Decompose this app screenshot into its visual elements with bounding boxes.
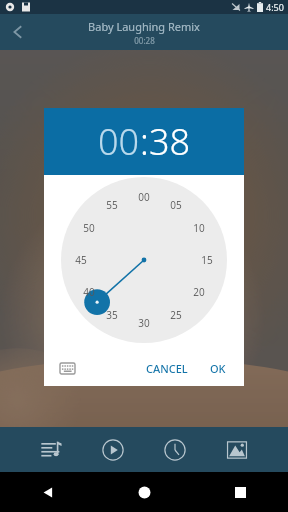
staticText: 35 (106, 308, 118, 322)
staticText: CANCEL (146, 361, 188, 376)
staticText: 50 (83, 221, 95, 235)
button[interactable]: 38 (149, 117, 191, 166)
button[interactable]: Minute dial (61, 177, 227, 343)
staticText: 40 (83, 285, 95, 299)
staticText: 00 (138, 190, 150, 204)
button[interactable]: Image (220, 433, 254, 467)
button[interactable]: Recents (223, 475, 257, 509)
button[interactable]: Home (127, 475, 161, 509)
button[interactable]: OK (202, 355, 234, 382)
button[interactable]: Play (96, 433, 130, 467)
staticText: Baby Laughing Remix (88, 19, 200, 34)
button[interactable]: Switch to keyboard input (54, 355, 80, 381)
button[interactable]: 00 (98, 117, 140, 166)
button[interactable]: Timer (158, 433, 192, 467)
button[interactable]: CANCEL (138, 355, 196, 382)
staticText: OK (210, 361, 226, 376)
staticText: 4:50 (266, 1, 284, 13)
staticText: 55 (106, 198, 118, 212)
staticText: 45 (75, 253, 87, 267)
staticText: : (140, 117, 149, 166)
staticText: 20 (193, 285, 205, 299)
staticText: 30 (138, 316, 150, 330)
staticText: 00:28 (134, 35, 155, 46)
button[interactable]: Back (31, 475, 65, 509)
staticText: 25 (170, 308, 182, 322)
staticText: 10 (193, 221, 205, 235)
staticText: 15 (201, 253, 213, 267)
staticText: 05 (170, 198, 182, 212)
button[interactable]: Playlist (34, 433, 68, 467)
button[interactable]: Back (0, 14, 36, 50)
